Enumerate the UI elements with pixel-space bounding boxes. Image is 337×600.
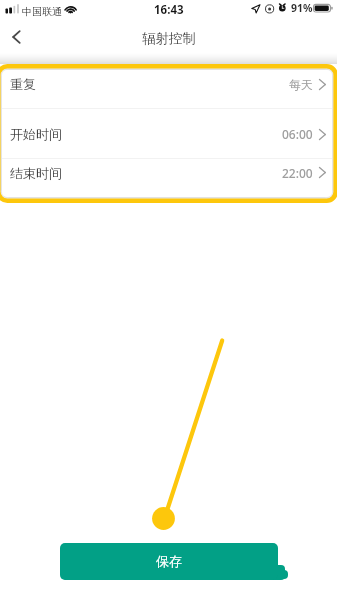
staticText: 22:00 (282, 165, 313, 181)
staticText: 结束时间 (10, 165, 62, 181)
button[interactable]: 保存 (60, 543, 278, 580)
button[interactable]: 开始时间 (2, 109, 332, 159)
staticText: 每天 (289, 77, 313, 92)
staticText: 保存 (156, 553, 182, 569)
staticText: 辐射控制 (142, 30, 196, 47)
staticText: 06:00 (282, 126, 313, 142)
staticText: 开始时间 (10, 126, 62, 142)
staticText: 16:43 (154, 2, 184, 18)
button[interactable]: Back (0, 20, 36, 53)
staticText: 重复 (10, 76, 36, 92)
button[interactable]: 结束时间 (2, 159, 332, 186)
staticText: 91% (291, 1, 313, 15)
staticText: 中国联通 (22, 5, 62, 18)
button[interactable]: 重复 (2, 70, 332, 109)
